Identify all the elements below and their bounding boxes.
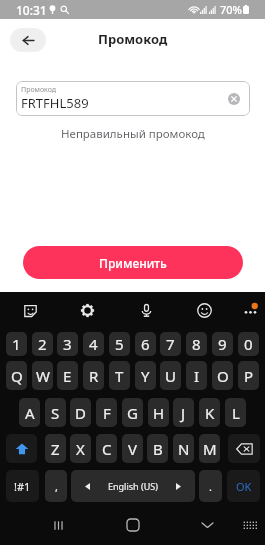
staticText: 2	[38, 334, 47, 354]
staticText: Q	[11, 366, 23, 386]
staticText: D	[75, 403, 86, 423]
button[interactable]: N	[173, 434, 194, 463]
staticText: 10:31	[16, 2, 47, 18]
button[interactable]: 9	[212, 332, 233, 356]
button[interactable]: Space, English (US)	[71, 470, 195, 502]
button[interactable]: ,	[45, 470, 67, 502]
staticText: OK	[236, 479, 252, 494]
staticText: J	[181, 403, 186, 423]
button[interactable]: Z	[45, 434, 66, 463]
staticText: G	[127, 403, 138, 423]
button[interactable]: Home	[115, 505, 151, 545]
button[interactable]: 1	[6, 332, 27, 356]
button[interactable]: Clear	[226, 91, 242, 107]
button[interactable]: 2	[32, 332, 53, 356]
button[interactable]: R	[83, 361, 104, 390]
staticText: 1	[12, 334, 21, 354]
staticText: P	[244, 366, 254, 386]
staticText: FRTFHL589	[21, 94, 89, 112]
button[interactable]: X	[70, 434, 91, 463]
staticText: 0	[244, 334, 253, 354]
staticText: English (US)	[108, 480, 158, 492]
button[interactable]: Q	[6, 361, 27, 390]
button[interactable]: Применить	[23, 246, 243, 279]
staticText: Промокод	[98, 30, 168, 48]
staticText: 8	[192, 334, 201, 354]
button[interactable]: G	[122, 398, 143, 427]
staticText: A	[25, 403, 35, 423]
button[interactable]: Backspace	[228, 434, 260, 463]
staticText: N	[178, 439, 190, 459]
staticText: T	[115, 366, 124, 386]
button[interactable]: Hide keyboard	[189, 505, 226, 545]
button[interactable]: Emoji	[188, 294, 220, 326]
staticText: 9	[218, 334, 227, 354]
button[interactable]: 4	[83, 332, 104, 356]
button[interactable]: S	[45, 398, 66, 427]
staticText: I	[194, 366, 200, 386]
button[interactable]: !#1	[6, 470, 39, 502]
button[interactable]: Back	[10, 28, 46, 52]
button[interactable]: More options	[234, 294, 265, 326]
button[interactable]: 6	[135, 332, 156, 356]
staticText: W	[36, 366, 50, 386]
staticText: U	[165, 366, 176, 386]
button[interactable]: 5	[109, 332, 130, 356]
staticText: B	[153, 439, 163, 459]
button[interactable]: Stickers	[14, 294, 46, 326]
staticText: 7	[166, 334, 175, 354]
staticText: L	[232, 403, 240, 423]
button[interactable]: D	[70, 398, 91, 427]
staticText: C	[102, 439, 112, 459]
button[interactable]: C	[96, 434, 117, 463]
button[interactable]: I	[186, 361, 207, 390]
staticText: S	[51, 403, 60, 423]
button[interactable]: OK	[227, 470, 260, 502]
staticText: .	[209, 479, 212, 494]
button[interactable]: .	[199, 470, 222, 502]
staticText: Неправильный промокод	[61, 126, 205, 142]
button[interactable]: Промокод	[16, 81, 250, 116]
button[interactable]: F	[96, 398, 117, 427]
button[interactable]: K	[199, 398, 220, 427]
button[interactable]: U	[160, 361, 181, 390]
button[interactable]: B	[147, 434, 168, 463]
staticText: X	[76, 439, 85, 459]
staticText: E	[63, 366, 72, 386]
button[interactable]: M	[199, 434, 220, 463]
staticText: Y	[141, 366, 150, 386]
button[interactable]: Switch keyboard	[234, 505, 265, 545]
button[interactable]: W	[32, 361, 53, 390]
button[interactable]: 7	[160, 332, 181, 356]
staticText: K	[205, 403, 215, 423]
staticText: 6	[141, 334, 150, 354]
button[interactable]: 8	[186, 332, 207, 356]
button[interactable]: V	[122, 434, 143, 463]
button[interactable]: 3	[57, 332, 78, 356]
button[interactable]: O	[212, 361, 233, 390]
staticText: R	[89, 366, 99, 386]
staticText: Z	[51, 439, 60, 459]
staticText: 4	[89, 334, 98, 354]
button[interactable]: Voice input	[130, 294, 162, 326]
button[interactable]: Settings	[71, 294, 103, 326]
button[interactable]: J	[173, 398, 194, 427]
button[interactable]: T	[109, 361, 130, 390]
staticText: 70%	[220, 2, 242, 17]
button[interactable]: A	[19, 398, 40, 427]
button[interactable]: Shift	[6, 434, 37, 463]
button[interactable]: P	[238, 361, 259, 390]
staticText: F	[103, 403, 111, 423]
button[interactable]: L	[225, 398, 246, 427]
staticText: ,	[55, 479, 58, 494]
button[interactable]: 0	[238, 332, 259, 356]
button[interactable]: H	[148, 398, 169, 427]
staticText: Применить	[99, 255, 167, 271]
button[interactable]: E	[57, 361, 78, 390]
staticText: Промокод	[21, 85, 56, 95]
staticText: O	[217, 366, 229, 386]
button[interactable]: Y	[135, 361, 156, 390]
button[interactable]: Recent apps	[40, 505, 77, 545]
staticText: 5	[115, 334, 124, 354]
staticText: H	[153, 403, 165, 423]
